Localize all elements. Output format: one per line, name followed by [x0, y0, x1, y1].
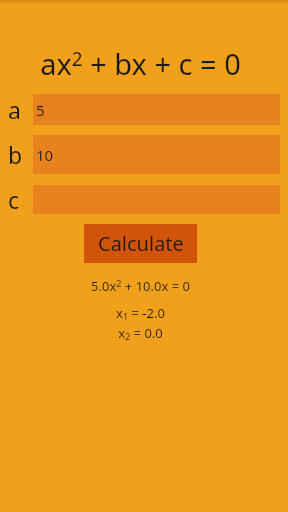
- staticText: x1 = -2.0: [116, 304, 165, 323]
- staticText: ax2 + bx + c = 0: [40, 44, 241, 83]
- staticText: 10: [36, 145, 54, 165]
- staticText: Calculate: [98, 230, 184, 257]
- staticText: 5: [36, 100, 45, 120]
- button[interactable]: 5: [33, 94, 280, 125]
- staticText: c: [8, 184, 20, 215]
- button[interactable]: 10: [33, 135, 280, 174]
- staticText: a: [8, 94, 21, 125]
- staticText: 5.0x2 + 10.0x = 0: [91, 277, 190, 295]
- staticText: x2 = 0.0: [118, 324, 163, 343]
- staticText: b: [8, 139, 23, 170]
- button[interactable]: Calculate: [84, 224, 197, 263]
